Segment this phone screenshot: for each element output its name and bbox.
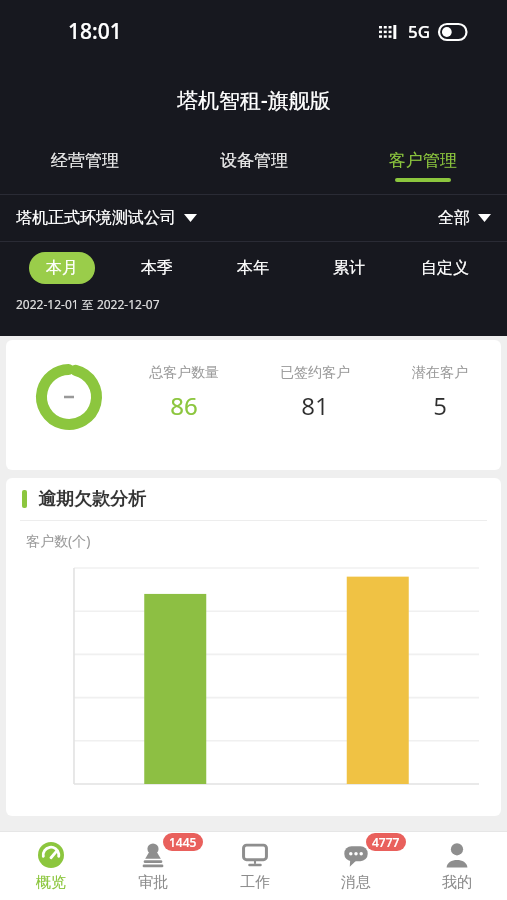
staticText: 本季 — [141, 258, 173, 278]
staticText: 累计 — [333, 258, 365, 278]
staticText: 全部 — [438, 208, 470, 228]
button[interactable]: 塔机正式环境测试公司 — [16, 208, 197, 228]
button[interactable]: 审批 — [102, 832, 204, 900]
staticText: 5G — [408, 20, 431, 43]
staticText: 经营管理 — [51, 150, 119, 171]
button[interactable]: 本季 — [124, 252, 190, 284]
staticText: 自定义 — [421, 258, 469, 278]
button[interactable]: 总客户数量 — [116, 364, 251, 422]
button[interactable]: 总客户数量 — [6, 340, 501, 470]
staticText: 审批 — [138, 873, 168, 892]
staticText: 客户管理 — [389, 150, 457, 171]
staticText: 塔机正式环境测试公司 — [16, 208, 176, 228]
button[interactable]: 经营管理 — [0, 138, 169, 194]
staticText: 我的 — [442, 873, 472, 892]
button[interactable]: 已签约客户 — [251, 364, 379, 422]
staticText: 本年 — [237, 258, 269, 278]
button[interactable]: 客户管理 — [338, 138, 507, 194]
button[interactable]: 累计 — [316, 252, 382, 284]
button[interactable]: 工作 — [204, 832, 305, 900]
staticText: 工作 — [240, 873, 270, 892]
button[interactable]: 本月 — [29, 252, 95, 284]
button[interactable]: 自定义 — [404, 252, 486, 284]
staticText: 逾期欠款分析 — [38, 488, 146, 511]
staticText: 本月 — [46, 258, 78, 278]
button[interactable]: 概览 — [0, 832, 102, 900]
staticText: 1445 — [169, 834, 197, 850]
staticText: 86 — [170, 389, 198, 422]
staticText: 4777 — [372, 834, 400, 850]
button[interactable]: 本年 — [220, 252, 286, 284]
staticText: 设备管理 — [220, 150, 288, 171]
staticText: 总客户数量 — [149, 364, 219, 382]
button[interactable]: 全部 — [438, 208, 491, 228]
staticText: 2022-12-01 至 2022-12-07 — [16, 296, 160, 312]
button[interactable]: 设备管理 — [169, 138, 338, 194]
staticText: 消息 — [341, 873, 371, 892]
staticText: 潜在客户 — [412, 364, 468, 382]
button[interactable]: 我的 — [406, 832, 507, 900]
staticText: 18:01 — [68, 17, 122, 46]
staticText: 概览 — [36, 873, 66, 892]
button[interactable]: 潜在客户 — [379, 364, 501, 422]
staticText: 已签约客户 — [280, 364, 350, 382]
staticText: 塔机智租-旗舰版 — [177, 86, 331, 115]
staticText: 客户数(个) — [26, 531, 91, 550]
staticText: 81 — [301, 389, 329, 422]
staticText: 5 — [433, 389, 447, 422]
button[interactable]: 消息 — [305, 832, 406, 900]
